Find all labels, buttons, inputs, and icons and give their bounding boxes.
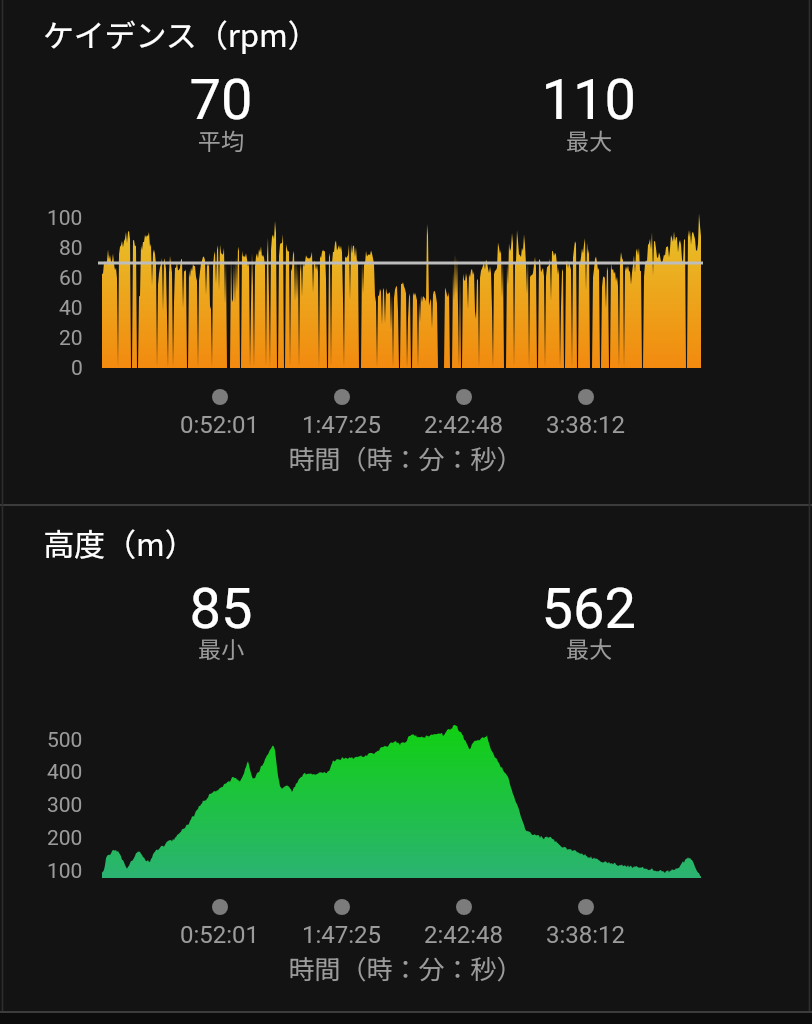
button[interactable]: ケイデンス（rpm）チャート [0, 0, 812, 504]
button[interactable]: 高度（m）チャート [0, 506, 812, 1024]
